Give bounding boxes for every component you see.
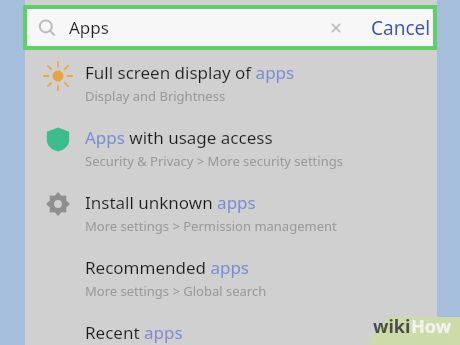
staticText: Install unknown apps [85,191,256,214]
staticText: Apps with usage access [85,126,273,149]
button[interactable]: Apps with usage access [25,120,437,185]
staticText: Security & Privacy > More security setti… [85,152,343,170]
staticText: More settings > Permission management [85,217,337,235]
staticText: More settings > Global search [85,282,267,300]
button[interactable]: Install unknown apps [25,185,437,250]
other: Search [37,18,57,38]
button[interactable]: Recommended apps [25,250,437,315]
button[interactable]: Search [27,9,433,46]
staticText: Recent apps [85,321,183,344]
button[interactable]: Clear search [327,19,345,37]
staticText: wiki [373,314,411,339]
staticText: Full screen display of apps [85,61,295,84]
button[interactable]: Recent apps [25,315,437,345]
button[interactable]: Cancel [371,15,433,41]
staticText: How [411,314,452,339]
staticText: Apps [69,16,109,39]
staticText: Cancel [371,15,431,41]
staticText: Recommended apps [85,256,249,279]
staticText: Display and Brightness [85,87,226,105]
button[interactable]: Full screen display of apps [25,55,437,120]
